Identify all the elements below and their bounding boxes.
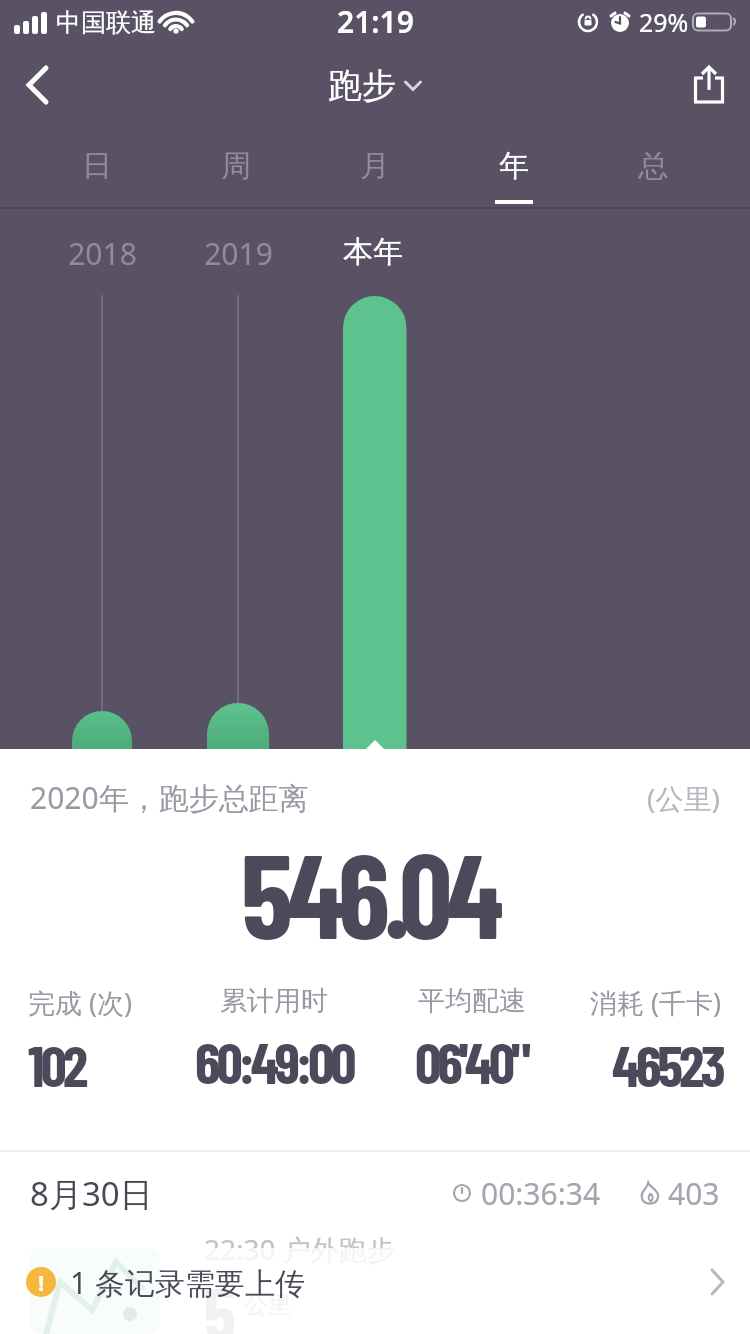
staticText: 总 (638, 147, 668, 185)
staticText: 60:49:00 (195, 1026, 353, 1096)
staticText: 06'40" (415, 1026, 528, 1096)
button[interactable]: 日 (64, 126, 130, 206)
staticText: 29% (639, 5, 689, 39)
staticText: 1 条记录需要上传 (70, 1262, 305, 1303)
staticText: 平均配速 (418, 984, 526, 1018)
button[interactable]: 总 (620, 126, 686, 206)
button[interactable]: 月 (342, 126, 408, 206)
button[interactable] (14, 61, 62, 109)
staticText: 2019 (204, 233, 273, 274)
staticText: 102 (28, 1029, 85, 1099)
staticText: 月 (360, 147, 390, 185)
staticText: 消耗 (千卡) (590, 984, 722, 1021)
button[interactable] (686, 62, 732, 108)
staticText: 2018 (68, 233, 137, 274)
staticText: 2020年，跑步总距离 (30, 777, 309, 818)
button[interactable]: ! (26, 1248, 726, 1316)
staticText: 中国联通 (56, 7, 156, 38)
staticText: 22:30 户外跑步 (204, 1230, 395, 1268)
staticText: ! (38, 1267, 45, 1297)
staticText: 21:19 (337, 1, 414, 42)
staticText: 本年 (343, 233, 403, 271)
staticText: 日 (82, 147, 112, 185)
staticText: 公里 (244, 1290, 292, 1320)
staticText: (公里) (647, 779, 720, 817)
staticText: 546.04 (241, 821, 498, 963)
staticText: 403 (668, 1173, 720, 1214)
staticText: 46523 (612, 1029, 722, 1099)
staticText: 周 (221, 147, 251, 185)
staticText: 完成 (次) (28, 984, 133, 1021)
staticText: 年 (499, 147, 529, 185)
button[interactable]: 年 (481, 126, 547, 206)
staticText: 跑步 (328, 64, 396, 107)
staticText: 8月30日 (30, 1171, 153, 1216)
staticText: 累计用时 (220, 984, 328, 1018)
staticText: 5 (204, 1268, 236, 1334)
button[interactable]: 周 (203, 126, 269, 206)
button[interactable]: 跑步 (328, 64, 422, 107)
staticText: 00:36:34 (481, 1173, 601, 1214)
